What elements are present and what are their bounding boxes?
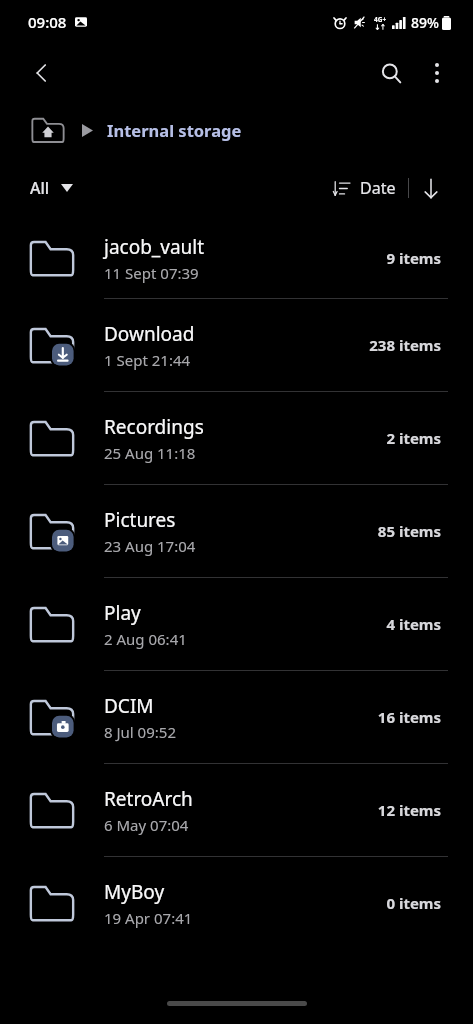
staticText: Internal storage xyxy=(107,119,242,141)
button[interactable]: All xyxy=(24,171,79,205)
staticText: Recordings xyxy=(104,414,204,440)
staticText: 11 Sept 07:39 xyxy=(104,263,199,283)
staticText: Date xyxy=(360,177,396,199)
staticText: Play xyxy=(104,600,141,626)
staticText: Pictures xyxy=(104,507,176,533)
staticText: 4G+ xyxy=(374,15,387,24)
staticText: 4 items xyxy=(386,614,441,634)
staticText: 25 Aug 11:18 xyxy=(104,443,196,463)
button[interactable]: Internal storage root xyxy=(28,114,68,146)
staticText: 6 May 07:04 xyxy=(104,815,189,835)
staticText: 09:08 xyxy=(28,12,67,32)
button[interactable]: Sort descending xyxy=(409,166,453,210)
button[interactable]: RetroArch xyxy=(0,764,473,856)
staticText: 16 items xyxy=(377,707,441,727)
button[interactable]: Internal storage xyxy=(105,115,244,145)
button[interactable]: Recordings xyxy=(0,392,473,484)
staticText: 19 Apr 07:41 xyxy=(104,908,193,928)
staticText: 2 Aug 06:41 xyxy=(104,629,187,649)
button[interactable]: Search xyxy=(367,49,415,97)
staticText: Download xyxy=(104,321,195,347)
button[interactable]: DCIM xyxy=(0,671,473,763)
button[interactable]: jacob_vault xyxy=(0,218,473,298)
button[interactable]: Pictures xyxy=(0,485,473,577)
button[interactable]: Play xyxy=(0,578,473,670)
staticText: 23 Aug 17:04 xyxy=(104,536,196,556)
staticText: 9 items xyxy=(386,248,441,268)
staticText: 12 items xyxy=(377,800,441,820)
staticText: RetroArch xyxy=(104,786,193,812)
staticText: 89% xyxy=(411,13,439,32)
staticText: 8 Jul 09:52 xyxy=(104,722,176,742)
button[interactable]: Download xyxy=(0,299,473,391)
button[interactable]: More options xyxy=(415,51,459,95)
button[interactable]: MyBoy xyxy=(0,857,473,949)
staticText: MyBoy xyxy=(104,879,165,905)
button[interactable]: Date xyxy=(327,171,402,205)
staticText: jacob_vault xyxy=(104,234,205,260)
staticText: 85 items xyxy=(377,521,441,541)
staticText: DCIM xyxy=(104,693,154,719)
staticText: 2 items xyxy=(386,428,441,448)
staticText: All xyxy=(30,177,50,199)
staticText: 0 items xyxy=(386,893,441,913)
button[interactable]: Back xyxy=(18,49,66,97)
staticText: 1 Sept 21:44 xyxy=(104,350,191,370)
staticText: 238 items xyxy=(369,335,441,355)
